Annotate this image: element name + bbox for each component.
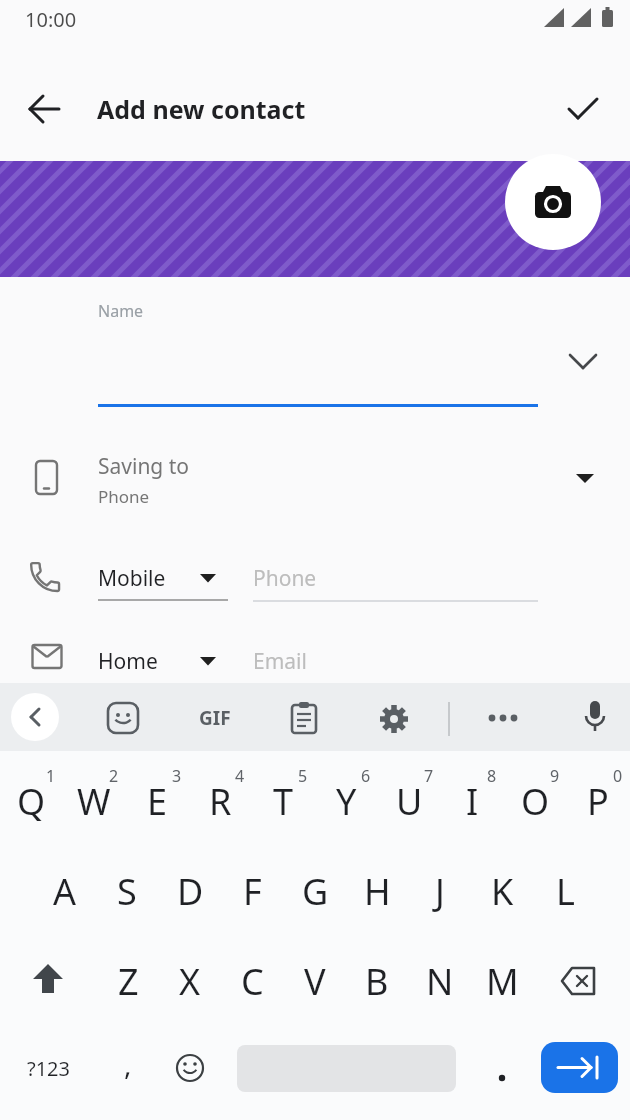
staticText: U	[396, 777, 423, 826]
staticText: Add new contact	[97, 92, 306, 126]
button[interactable]: O	[507, 773, 563, 829]
staticText: E	[147, 777, 168, 826]
staticText: H	[364, 867, 391, 916]
staticText: Mobile	[98, 564, 166, 593]
button[interactable]: Q	[3, 773, 59, 829]
button[interactable]: W	[66, 773, 122, 829]
button[interactable]	[377, 702, 411, 736]
staticText: A	[53, 867, 77, 916]
staticText: 10:00	[25, 6, 77, 33]
button[interactable]: K	[474, 863, 530, 919]
staticText: C	[241, 957, 264, 1006]
staticText: Q	[17, 777, 46, 826]
button[interactable]	[565, 90, 601, 126]
button[interactable]	[578, 699, 612, 737]
staticText: V	[304, 957, 326, 1006]
button[interactable]: Y	[318, 773, 374, 829]
button[interactable]	[289, 701, 319, 735]
button[interactable]	[106, 701, 140, 735]
button[interactable]: T	[255, 773, 311, 829]
button[interactable]: E	[129, 773, 185, 829]
staticText: F	[243, 867, 262, 916]
staticText: P	[587, 777, 609, 826]
staticText: T	[273, 777, 294, 826]
staticText: Home	[98, 647, 158, 676]
staticText: Phone	[253, 564, 317, 593]
button[interactable]: F	[224, 863, 280, 919]
button[interactable]: ?123	[13, 1048, 83, 1088]
button[interactable]: C	[224, 953, 280, 1009]
button[interactable]	[484, 1050, 520, 1086]
button[interactable]	[172, 1050, 208, 1086]
staticText: 0	[613, 765, 623, 787]
button[interactable]: GIF	[185, 701, 245, 735]
staticText: 8	[487, 765, 497, 787]
staticText: G	[302, 867, 329, 916]
button[interactable]: N	[412, 953, 468, 1009]
staticText: S	[117, 867, 137, 916]
staticText: Email	[253, 647, 307, 676]
staticText: 1	[46, 765, 56, 787]
staticText: I	[466, 777, 479, 826]
button[interactable]: R	[192, 773, 248, 829]
button[interactable]	[11, 693, 59, 741]
button[interactable]	[96, 556, 230, 602]
button[interactable]: L	[537, 863, 593, 919]
staticText: ?123	[27, 1055, 70, 1082]
staticText: Name	[98, 300, 144, 322]
staticText: Y	[336, 777, 357, 826]
button[interactable]: V	[287, 953, 343, 1009]
staticText: 9	[550, 765, 560, 787]
button[interactable]	[26, 959, 70, 1003]
staticText: 4	[235, 765, 245, 787]
staticText: K	[491, 867, 514, 916]
button[interactable]: P	[570, 773, 626, 829]
staticText: Z	[118, 957, 139, 1006]
button[interactable]: A	[37, 863, 93, 919]
button[interactable]: ,	[108, 1040, 148, 1088]
staticText: N	[426, 957, 454, 1006]
staticText: 3	[172, 765, 182, 787]
button[interactable]	[98, 300, 538, 404]
button[interactable]	[253, 640, 538, 682]
button[interactable]: D	[162, 863, 218, 919]
button[interactable]	[484, 701, 522, 735]
button[interactable]	[27, 91, 63, 127]
button[interactable]	[96, 640, 230, 682]
staticText: W	[77, 777, 111, 826]
button[interactable]: Z	[100, 953, 156, 1009]
button[interactable]	[558, 961, 602, 1001]
button[interactable]: X	[162, 953, 218, 1009]
staticText: Saving to	[98, 452, 190, 481]
staticText: 6	[361, 765, 371, 787]
staticText: 5	[298, 765, 308, 787]
staticText: L	[556, 867, 575, 916]
staticText: B	[365, 957, 389, 1006]
button[interactable]: I	[444, 773, 500, 829]
staticText: R	[209, 777, 232, 826]
staticText: 7	[424, 765, 434, 787]
button[interactable]: S	[99, 863, 155, 919]
button[interactable]: H	[349, 863, 405, 919]
staticText: ,	[124, 1045, 132, 1083]
button[interactable]	[560, 342, 606, 380]
button[interactable]: B	[349, 953, 405, 1009]
staticText: O	[521, 777, 550, 826]
staticText: J	[435, 867, 445, 916]
staticText: M	[486, 957, 519, 1006]
button[interactable]: G	[287, 863, 343, 919]
button[interactable]	[505, 154, 601, 250]
staticText: 2	[109, 765, 119, 787]
staticText: GIF	[199, 705, 231, 731]
staticText: Phone	[98, 485, 150, 508]
staticText: X	[179, 957, 201, 1006]
button[interactable]: J	[412, 863, 468, 919]
button[interactable]: U	[381, 773, 437, 829]
staticText: D	[177, 867, 204, 916]
button[interactable]	[0, 445, 630, 511]
button[interactable]	[253, 556, 538, 602]
button[interactable]: M	[474, 953, 530, 1009]
button[interactable]	[541, 1042, 618, 1093]
